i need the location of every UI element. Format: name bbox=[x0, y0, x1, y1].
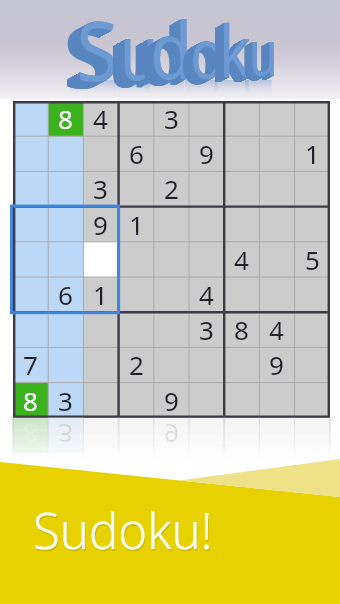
staticText: o bbox=[181, 9, 215, 104]
staticText: u bbox=[119, 0, 157, 104]
staticText: S bbox=[72, 0, 116, 107]
staticText: 8 bbox=[23, 417, 38, 452]
staticText: Sudoku! bbox=[34, 499, 214, 565]
staticText: o bbox=[185, 7, 219, 102]
staticText: d bbox=[147, 0, 189, 104]
staticText: S bbox=[68, 0, 112, 109]
staticText: u bbox=[115, 2, 153, 106]
staticText: d bbox=[144, 0, 186, 106]
staticText: k bbox=[212, 4, 244, 102]
staticText: S bbox=[71, 0, 115, 108]
staticText: k bbox=[214, 3, 246, 101]
staticText: 9 bbox=[164, 417, 179, 452]
staticText: o bbox=[190, 4, 224, 99]
staticText: u bbox=[245, 10, 274, 97]
staticText: d bbox=[142, 1, 184, 107]
staticText: 3 bbox=[164, 101, 179, 136]
staticText: S bbox=[70, 0, 114, 108]
staticText: u bbox=[243, 11, 272, 98]
staticText: 9 bbox=[93, 207, 108, 242]
staticText: S bbox=[64, 0, 108, 111]
staticText: u bbox=[249, 8, 278, 95]
staticText: 7 bbox=[23, 347, 38, 382]
staticText: u bbox=[118, 0, 156, 104]
staticText: u bbox=[246, 9, 275, 96]
staticText: u bbox=[244, 11, 273, 98]
staticText: u bbox=[111, 4, 149, 108]
staticText: 8 bbox=[234, 312, 249, 347]
staticText: u bbox=[117, 1, 155, 105]
staticText: u bbox=[248, 8, 277, 95]
staticText: 1 bbox=[305, 136, 320, 171]
staticText: 8 bbox=[58, 101, 73, 136]
staticText: u bbox=[109, 6, 147, 110]
staticText: o bbox=[183, 7, 217, 102]
staticText: d bbox=[142, 1, 184, 107]
staticText: d bbox=[141, 1, 183, 107]
staticText: u bbox=[242, 12, 271, 99]
staticText: u bbox=[116, 1, 154, 105]
staticText: d bbox=[147, 0, 189, 104]
staticText: k bbox=[217, 2, 249, 100]
staticText: k bbox=[210, 5, 242, 103]
staticText: u bbox=[108, 6, 146, 110]
staticText: S bbox=[74, 0, 118, 106]
staticText: u bbox=[113, 3, 151, 107]
staticText: o bbox=[183, 8, 217, 103]
staticText: d bbox=[148, 0, 190, 103]
staticText: d bbox=[140, 2, 182, 108]
staticText: S bbox=[67, 0, 111, 110]
staticText: d bbox=[150, 0, 192, 102]
staticText: o bbox=[187, 5, 221, 100]
staticText: S bbox=[75, 0, 119, 105]
staticText: 3 bbox=[93, 171, 108, 206]
staticText: 4 bbox=[269, 312, 284, 347]
staticText: 3 bbox=[58, 417, 73, 452]
staticText: u bbox=[114, 3, 152, 107]
staticText: k bbox=[212, 4, 244, 102]
staticText: S bbox=[67, 0, 111, 110]
staticText: Sudoku! bbox=[33, 497, 213, 563]
staticText: o bbox=[182, 8, 216, 103]
staticText: 9 bbox=[269, 347, 284, 382]
staticText: d bbox=[143, 0, 185, 106]
staticText: 9 bbox=[164, 383, 179, 418]
staticText: S bbox=[74, 0, 118, 106]
staticText: u bbox=[116, 2, 154, 106]
staticText: 5 bbox=[305, 242, 320, 277]
staticText: k bbox=[215, 3, 247, 101]
staticText: S bbox=[69, 0, 113, 109]
staticText: d bbox=[144, 0, 186, 105]
staticText: 6 bbox=[129, 136, 144, 171]
staticText: u bbox=[247, 9, 276, 96]
staticText: k bbox=[211, 5, 243, 103]
staticText: u bbox=[112, 3, 150, 107]
button[interactable]: 8 bbox=[13, 101, 330, 418]
staticText: o bbox=[184, 7, 218, 102]
staticText: S bbox=[72, 0, 116, 107]
staticText: u bbox=[248, 8, 277, 95]
staticText: k bbox=[217, 2, 249, 100]
staticText: k bbox=[215, 3, 247, 101]
staticText: o bbox=[182, 8, 216, 103]
staticText: u bbox=[113, 3, 151, 107]
staticText: d bbox=[140, 2, 182, 108]
staticText: d bbox=[150, 0, 192, 102]
staticText: u bbox=[242, 12, 271, 99]
staticText: u bbox=[242, 11, 271, 98]
staticText: 4 bbox=[234, 242, 249, 277]
staticText: 1 bbox=[129, 207, 144, 242]
staticText: k bbox=[213, 4, 245, 102]
staticText: k bbox=[219, 0, 251, 98]
staticText: 1 bbox=[93, 277, 108, 312]
staticText: u bbox=[243, 11, 272, 98]
staticText: S bbox=[63, 0, 107, 112]
button[interactable]: Sudoku! bbox=[22, 496, 252, 562]
staticText: k bbox=[219, 1, 251, 99]
staticText: u bbox=[118, 0, 156, 104]
staticText: u bbox=[112, 4, 150, 108]
staticText: S bbox=[75, 0, 119, 106]
staticText: u bbox=[110, 5, 148, 109]
staticText: u bbox=[109, 5, 147, 109]
staticText: u bbox=[241, 12, 270, 99]
